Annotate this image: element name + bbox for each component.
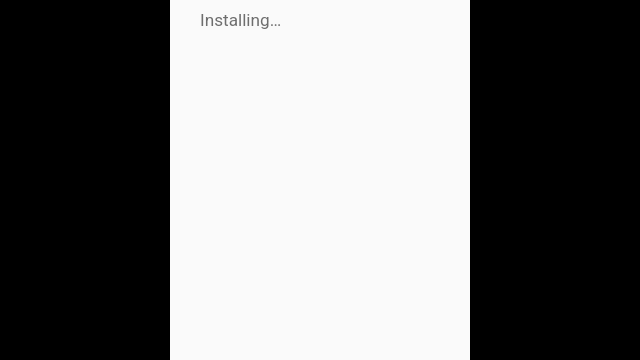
staticText: Installing… [200,10,282,30]
button[interactable]: Installing… [170,0,470,40]
